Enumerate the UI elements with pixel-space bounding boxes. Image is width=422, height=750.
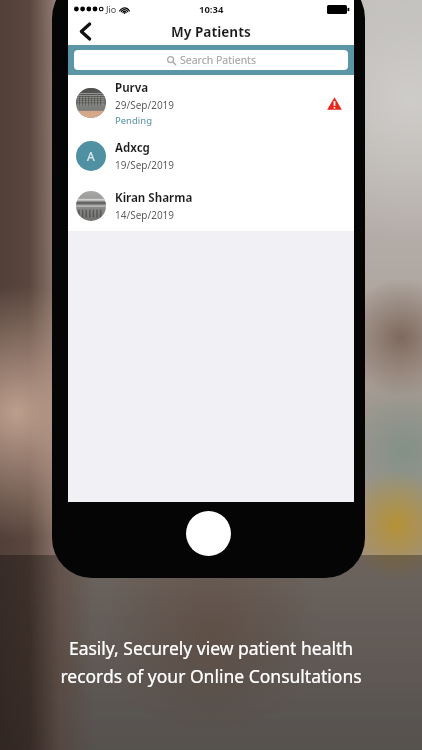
staticText: Pending (115, 114, 152, 127)
button[interactable]: A (68, 131, 354, 181)
button[interactable]: Search Patients (74, 50, 348, 70)
staticText: records of your Online Consultations (18, 664, 404, 688)
staticText: Jio (106, 3, 117, 15)
staticText: Purva (115, 80, 149, 96)
button[interactable]: Alert (324, 93, 344, 113)
button[interactable]: Home (186, 511, 231, 556)
button[interactable]: Purva (68, 75, 354, 131)
staticText: Easily, Securely view patient health (18, 636, 404, 660)
button[interactable]: Kiran Sharma (68, 181, 354, 231)
staticText: Kiran Sharma (115, 190, 193, 206)
staticText: 10:34 (199, 3, 224, 16)
staticText: A (87, 148, 95, 164)
staticText: 19/Sep/2019 (115, 158, 175, 172)
staticText: Search Patients (180, 53, 256, 67)
button[interactable]: Back (68, 18, 102, 45)
staticText: 29/Sep/2019 (115, 98, 175, 112)
staticText: 14/Sep/2019 (115, 208, 175, 222)
staticText: Adxcg (115, 140, 150, 156)
staticText: My Patients (171, 23, 251, 41)
